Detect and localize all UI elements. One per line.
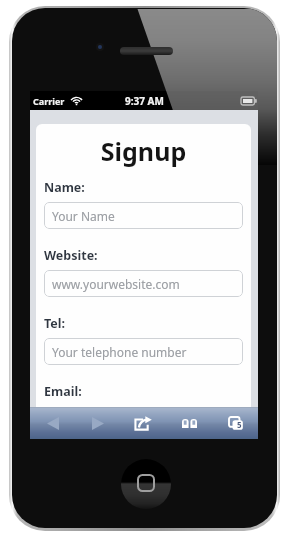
staticText: Your Name	[52, 208, 115, 224]
button[interactable]: Bookmarks	[166, 407, 212, 439]
staticText: www.yourwebsite.com	[52, 276, 180, 292]
staticText: Your telephone number	[52, 344, 187, 360]
button[interactable]: Forward	[75, 407, 120, 439]
button[interactable]: Home	[121, 459, 171, 509]
button[interactable]: Your Name	[44, 202, 243, 229]
staticText: Tel:	[44, 315, 66, 332]
button[interactable]: Back	[30, 407, 75, 439]
staticText: 5	[237, 419, 242, 430]
button[interactable]: Tabs	[212, 407, 258, 439]
staticText: Name:	[44, 179, 85, 196]
staticText: 9:37 AM	[125, 94, 164, 108]
staticText: Signup	[44, 134, 243, 168]
staticText: Carrier	[33, 95, 65, 107]
button[interactable]: Your telephone number	[44, 338, 243, 365]
staticText: Website:	[44, 247, 98, 264]
button[interactable]: www.yourwebsite.com	[44, 270, 243, 297]
staticText: Email:	[44, 383, 82, 400]
button[interactable]: Share	[120, 407, 166, 439]
